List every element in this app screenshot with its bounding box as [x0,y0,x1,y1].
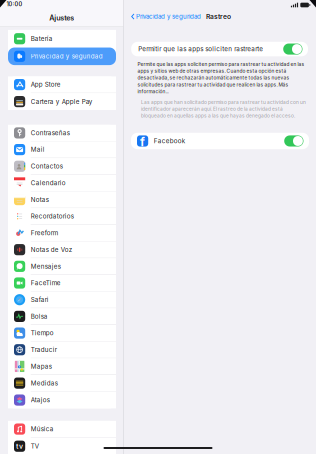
button[interactable]: Activado [284,135,303,146]
staticText: f [140,134,145,149]
button[interactable]: Tiempo [8,325,116,342]
staticText: Ajustes [49,13,74,22]
staticText: Mapas [31,363,52,370]
staticText: Contraseñas [31,129,70,137]
staticText: 10:00 [6,1,22,8]
staticText: Privacidad y seguridad [136,13,201,20]
staticText: Traducir [31,346,57,354]
button[interactable]: Traducir [8,342,116,358]
button[interactable]: App Store [8,76,116,93]
button[interactable]: Contraseñas [8,125,116,141]
button[interactable]: Freeform [8,225,116,242]
button[interactable]: Recordatorios [8,208,116,225]
button[interactable]: FaceTime [8,275,116,292]
button[interactable]: Mensajes [8,258,116,275]
button[interactable]: Cartera y Apple Pay [8,93,116,110]
button[interactable]: Privacidad y seguridad [8,47,116,65]
staticText: Mail [31,146,45,153]
staticText: Batería [31,35,53,42]
staticText: Las apps que han solicitado permiso para… [141,99,306,119]
button[interactable]: Calendario [8,175,116,192]
button[interactable]: Medidas [8,375,116,392]
staticText: Calendario [31,179,66,187]
button[interactable]: Notas [8,191,116,208]
button[interactable]: Safari [8,292,116,308]
staticText: Permite que las apps soliciten permiso p… [137,61,304,94]
staticText: Contactos [31,162,63,170]
staticText: Rastreo [206,12,231,21]
staticText: Notas [31,196,49,203]
staticText: Tiempo [31,329,54,337]
staticText: Cartera y Apple Pay [31,98,93,105]
staticText: Música [31,425,54,433]
button[interactable]: Contactos [8,158,116,175]
staticText: Medidas [31,379,58,387]
staticText: Mensajes [31,263,61,270]
button[interactable]: Privacidad y seguridad [131,9,201,24]
staticText: Facebook [154,137,185,145]
staticText: Bolsa [31,313,48,320]
staticText: FaceTime [31,279,61,287]
staticText: Recordatorios [31,212,74,220]
button[interactable]: Mail [8,141,116,158]
staticText: App Store [31,81,61,88]
staticText: Permitir que las apps soliciten rastrear… [138,45,263,53]
button[interactable]: Notas de Voz [8,242,116,258]
staticText: Atajos [31,396,50,404]
staticText: tv [16,442,23,450]
staticText: Safari [31,296,49,303]
button[interactable]: Atajos [8,392,116,408]
button[interactable]: Batería [8,30,116,47]
button[interactable]: tv [8,438,116,454]
staticText: Freeform [31,229,58,237]
button[interactable]: Mapas [8,358,116,375]
staticText: Privacidad y seguridad [31,52,103,60]
button[interactable]: Bolsa [8,308,116,325]
button[interactable]: Activado [283,43,302,55]
staticText: TV [31,442,39,450]
staticText: Notas de Voz [31,246,72,253]
button[interactable]: Música [8,421,116,438]
